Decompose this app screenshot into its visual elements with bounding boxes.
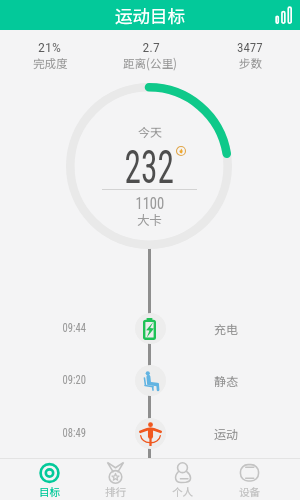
staticText: 运动 — [214, 425, 239, 442]
button[interactable]: 排行 — [85, 459, 145, 500]
staticText: 大卡 — [137, 210, 163, 228]
staticText: 设备 — [239, 484, 260, 499]
button[interactable]: 个人 — [152, 459, 212, 500]
staticText: 09:44 — [63, 321, 86, 335]
staticText: 目标 — [39, 484, 60, 499]
staticText: 08:49 — [63, 426, 86, 440]
button[interactable] — [100, 30, 200, 80]
button[interactable]: 运动目标 — [0, 0, 300, 30]
staticText: 充电 — [214, 320, 239, 337]
button[interactable] — [0, 30, 100, 80]
staticText: 步数 — [239, 55, 262, 72]
staticText: 完成度 — [33, 55, 68, 72]
button[interactable]: Statistics — [270, 2, 296, 28]
staticText: 1100 — [135, 194, 164, 213]
staticText: 21% — [38, 40, 62, 55]
staticText: 2.7 — [143, 40, 160, 55]
staticText: 09:20 — [63, 373, 86, 387]
staticText: 232 — [124, 140, 174, 194]
staticText: 距离(公里) — [123, 55, 177, 72]
staticText: 排行 — [105, 484, 126, 499]
button[interactable]: 08:49 — [0, 407, 300, 459]
staticText: 今天 — [138, 123, 163, 140]
staticText: 静态 — [214, 372, 239, 389]
button[interactable] — [200, 30, 300, 80]
button[interactable]: 设备 — [219, 459, 279, 500]
button[interactable]: 目标 — [19, 459, 79, 500]
staticText: 个人 — [172, 484, 193, 499]
button[interactable]: 09:20 — [0, 354, 300, 406]
staticText: 3477 — [237, 40, 263, 55]
staticText: 运动目标 — [115, 3, 185, 28]
button[interactable]: 09:44 — [0, 302, 300, 354]
